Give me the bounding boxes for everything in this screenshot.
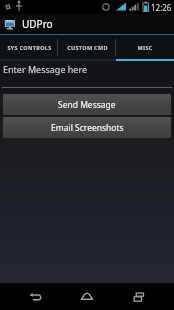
button[interactable]: Back: [18, 283, 52, 310]
button[interactable]: MISC: [116, 35, 174, 59]
button[interactable]: Email Screenshots: [3, 117, 171, 138]
staticText: UDPro: [22, 17, 53, 31]
button[interactable]: Send Message: [3, 94, 171, 115]
staticText: Enter Message here: [3, 63, 88, 75]
staticText: SYS CONTROLS: [7, 44, 52, 51]
button[interactable]: CUSTOM CMD: [58, 35, 116, 59]
staticText: MISC: [137, 44, 153, 51]
staticText: 12:26: [151, 2, 172, 13]
button[interactable]: Recent apps: [122, 283, 156, 310]
staticText: Email Screenshots: [51, 122, 124, 134]
staticText: CUSTOM CMD: [67, 44, 108, 51]
button[interactable]: Enter Message here: [0, 61, 174, 87]
button[interactable]: SYS CONTROLS: [0, 35, 58, 59]
button[interactable]: Home: [70, 283, 104, 310]
staticText: Send Message: [58, 99, 116, 111]
